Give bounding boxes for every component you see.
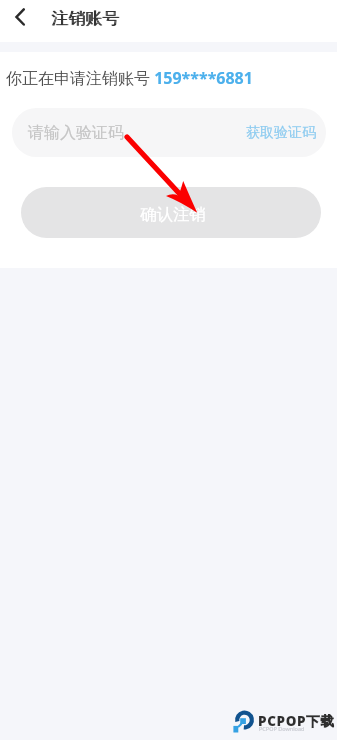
staticText: 注销账号 xyxy=(52,8,120,29)
button[interactable]: 确认注销 xyxy=(21,187,321,238)
staticText: 你正在申请注销账号 159****6881 xyxy=(6,67,253,89)
staticText: PCPOP Download xyxy=(259,725,305,732)
staticText: 注销账号 xyxy=(51,8,119,29)
button[interactable]: 获取验证码 xyxy=(230,112,326,154)
staticText: 请输入验证码 xyxy=(28,123,124,143)
staticText: 获取验证码 xyxy=(246,124,316,142)
staticText: 确认注销 xyxy=(140,204,206,225)
staticText: PCPOP下载 xyxy=(258,712,335,730)
button[interactable]: 返回 xyxy=(0,0,40,42)
